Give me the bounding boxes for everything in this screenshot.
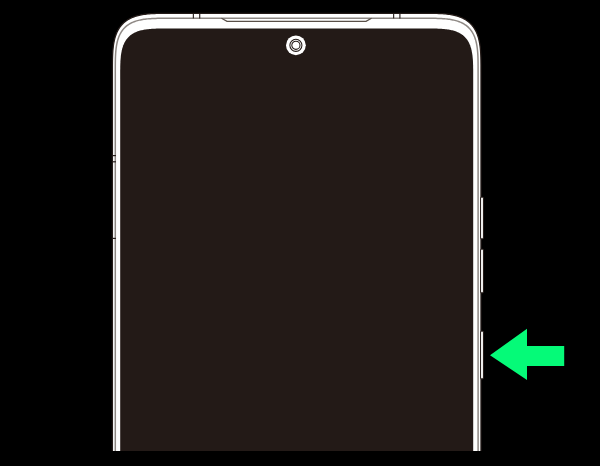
button[interactable]: Volume keys (474, 192, 490, 298)
button[interactable]: Side key (474, 325, 490, 385)
